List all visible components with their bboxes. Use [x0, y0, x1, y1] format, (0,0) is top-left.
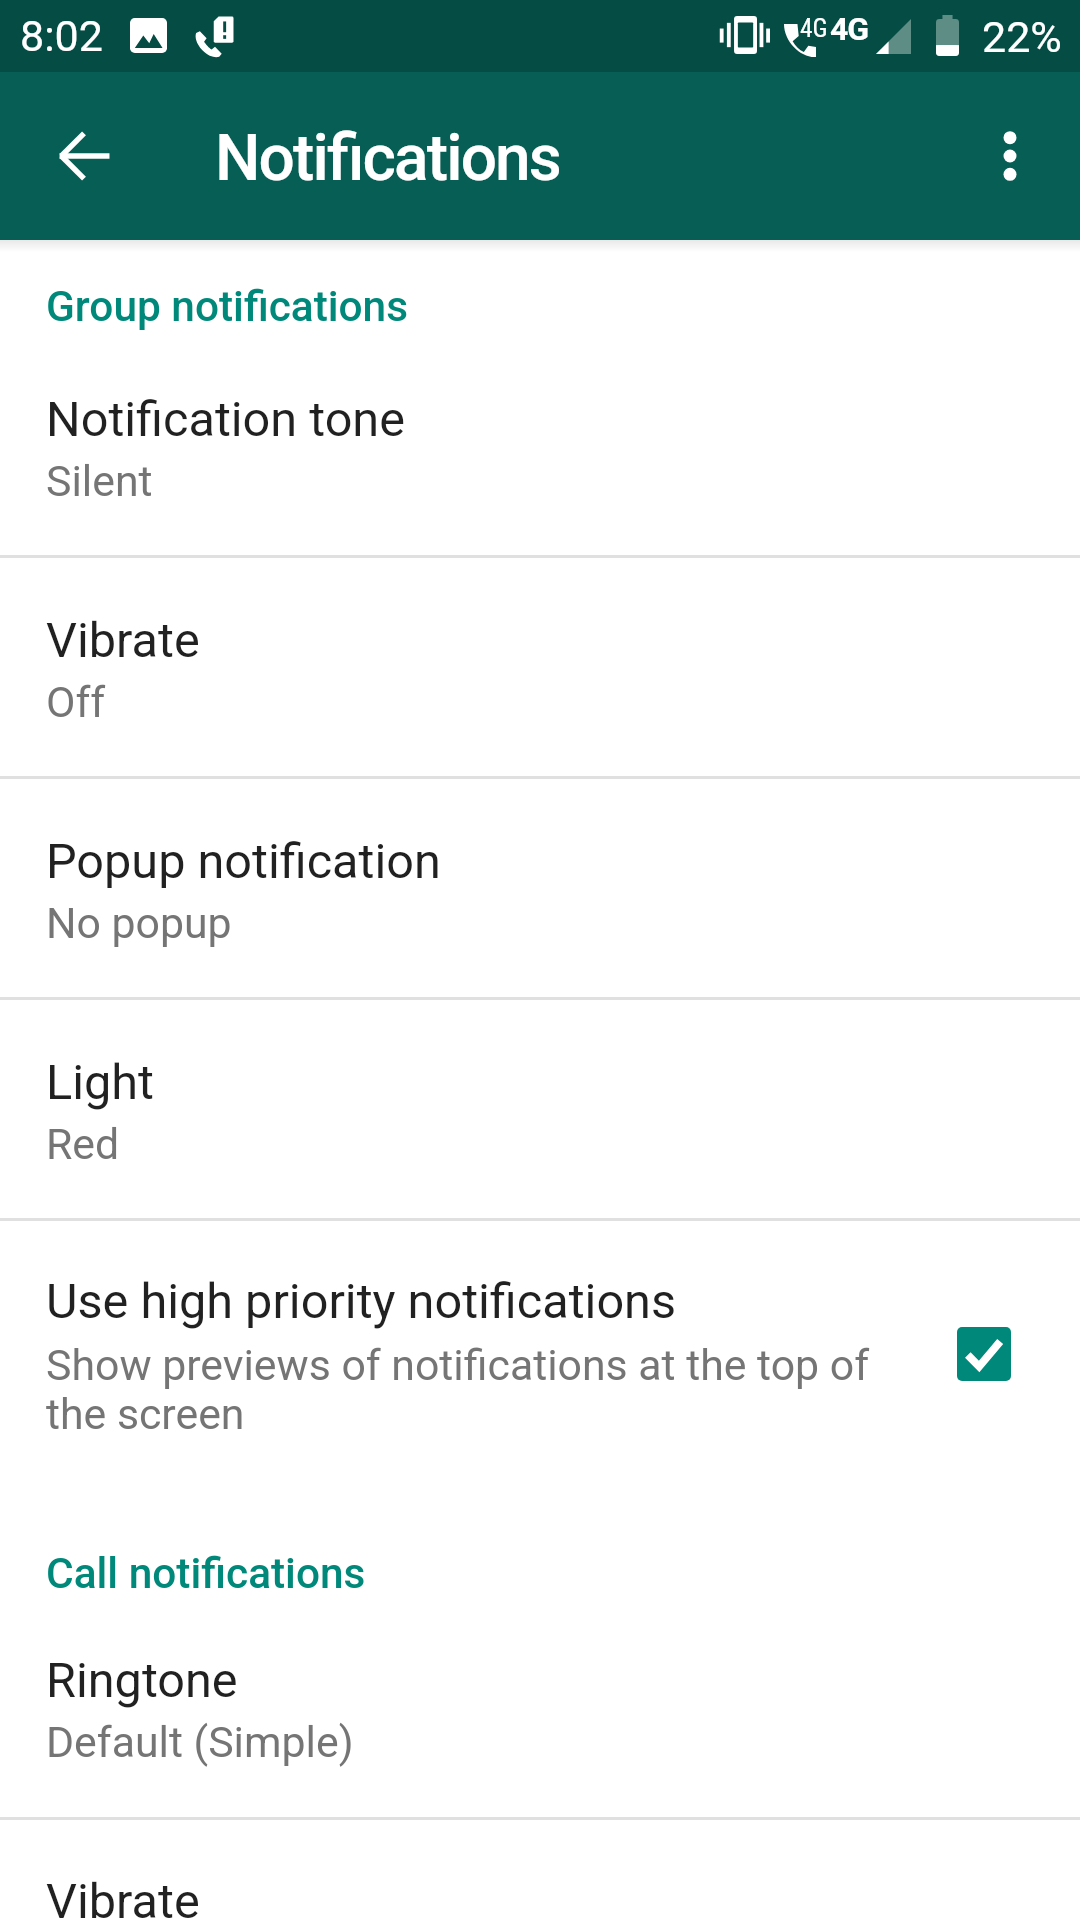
staticText: Notification tone — [46, 391, 405, 448]
staticText: No popup — [46, 898, 232, 948]
staticText: Group notifications — [46, 282, 409, 332]
staticText: Vibrate — [46, 1873, 200, 1920]
button[interactable]: Use high priority notifications — [957, 1327, 1011, 1381]
staticText: 22% — [982, 12, 1062, 62]
button[interactable]: Notification tone — [0, 335, 1080, 555]
staticText: 4G — [800, 13, 828, 43]
staticText: Vibrate — [46, 612, 200, 669]
button[interactable]: Back — [36, 108, 132, 204]
button[interactable]: Vibrate — [0, 1820, 1080, 1920]
staticText: Call notifications — [46, 1549, 366, 1599]
staticText: Red — [46, 1119, 120, 1169]
staticText: Use high priority notifications — [46, 1273, 677, 1330]
button[interactable]: Vibrate — [0, 558, 1080, 776]
button[interactable]: More options — [962, 108, 1058, 204]
button[interactable]: Ringtone — [0, 1600, 1080, 1817]
staticText: Off — [46, 677, 106, 727]
staticText: Default (Simple) — [46, 1717, 354, 1767]
button[interactable]: Use high priority notifications — [0, 1221, 1080, 1471]
button[interactable]: Popup notification — [0, 779, 1080, 997]
staticText: Popup notification — [46, 833, 441, 890]
staticText: Notifications — [215, 121, 560, 196]
staticText: Silent — [46, 456, 153, 506]
staticText: 8:02 — [20, 11, 103, 61]
button[interactable]: Light — [0, 1000, 1080, 1218]
staticText: Light — [46, 1054, 154, 1111]
staticText: Ringtone — [46, 1652, 238, 1709]
staticText: 4G — [830, 10, 868, 48]
staticText: Show previews of notifications at the to… — [46, 1340, 946, 1439]
